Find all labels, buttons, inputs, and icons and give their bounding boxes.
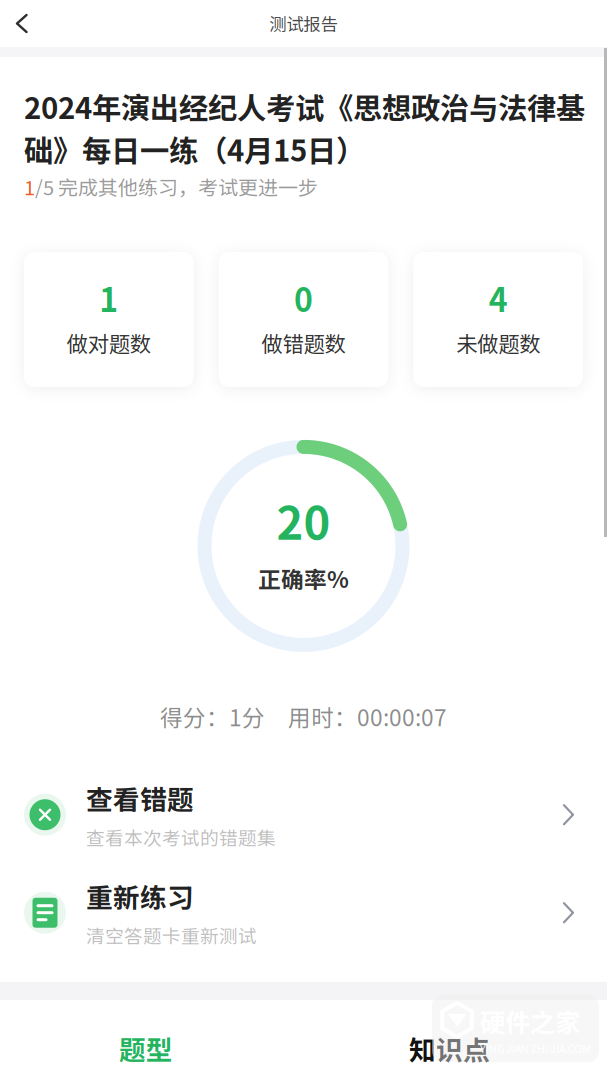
staticText: 1 xyxy=(99,275,118,321)
staticText: YING JIAN ZHI JIA.COM xyxy=(480,1041,591,1056)
staticText: 做错题数 xyxy=(261,327,345,358)
staticText: 20 xyxy=(276,487,330,553)
staticText: 查看本次考试的错题集 xyxy=(86,823,276,850)
staticText: 重新练习 xyxy=(86,877,194,915)
staticText: 知识点 xyxy=(409,1029,490,1068)
staticText: 查看错题 xyxy=(86,779,194,817)
button[interactable]: 查看错题 xyxy=(0,766,607,864)
staticText: 清空答题卡重新测试 xyxy=(86,921,257,948)
staticText: 测试报告 xyxy=(269,11,337,36)
button[interactable]: Back xyxy=(0,0,44,48)
button[interactable]: 重新练习 xyxy=(0,864,607,962)
staticText: 题型 xyxy=(119,1029,173,1068)
staticText: 做对题数 xyxy=(67,327,151,358)
button[interactable]: 题型 xyxy=(0,1000,292,1080)
staticText: 0 xyxy=(294,275,313,321)
staticText: 硬件之家 xyxy=(480,1003,580,1040)
staticText: 4 xyxy=(489,275,508,321)
staticText: /5 完成其他练习，考试更进一步 xyxy=(35,172,318,201)
staticText: 正确率% xyxy=(258,562,349,595)
button[interactable]: 知识点 xyxy=(292,1000,607,1080)
staticText: 未做题数 xyxy=(456,327,540,358)
staticText: 1 xyxy=(24,172,35,201)
staticText: 得分：1分 用时：00:00:07 xyxy=(160,700,447,733)
staticText: 础》每日一练（4月15日） xyxy=(24,127,365,170)
staticText: 2024年演出经纪人考试《思想政治与法律基 xyxy=(24,85,585,127)
